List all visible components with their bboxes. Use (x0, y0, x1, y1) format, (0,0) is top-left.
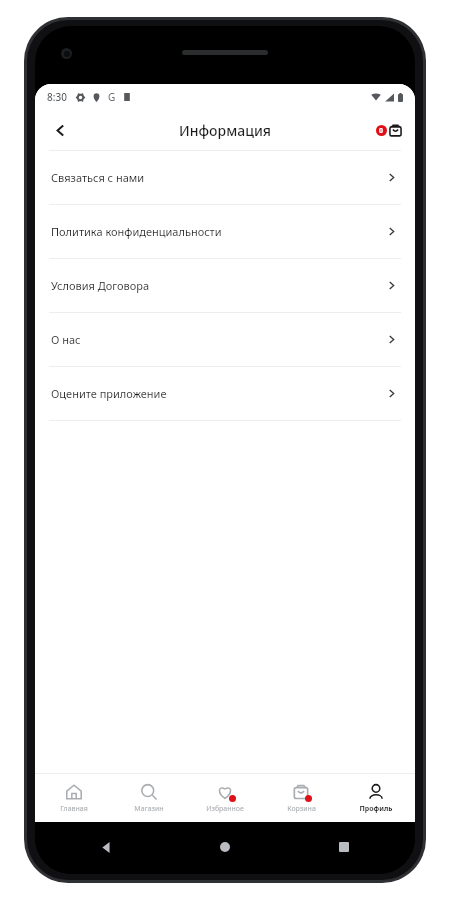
staticText: Корзина (287, 804, 316, 814)
button[interactable]: Условия Договора (35, 259, 415, 312)
button[interactable]: О нас (35, 313, 415, 366)
staticText: Избранное (206, 804, 244, 814)
button[interactable]: Cart (371, 112, 407, 148)
staticText: Условия Договора (51, 278, 386, 293)
button[interactable]: Оцените приложение (35, 367, 415, 420)
staticText: 0 (379, 126, 384, 136)
button[interactable]: Back (43, 113, 77, 147)
staticText: Политика конфиденциальности (51, 224, 386, 239)
staticText: 8:30 (47, 90, 67, 104)
button[interactable]: Home (212, 834, 238, 860)
button[interactable]: Избранное (188, 783, 262, 814)
button[interactable]: Recent apps (331, 834, 357, 860)
button[interactable]: Магазин (112, 783, 186, 814)
staticText: Информация (179, 121, 271, 140)
button[interactable]: Связаться с нами (35, 151, 415, 204)
button[interactable]: Политика конфиденциальности (35, 205, 415, 258)
button[interactable]: Корзина (264, 783, 338, 814)
staticText: О нас (51, 332, 386, 347)
staticText: G (108, 90, 116, 104)
staticText: Главная (60, 804, 88, 814)
button[interactable]: Профиль (339, 783, 413, 814)
button[interactable]: Back (93, 834, 119, 860)
staticText: Магазин (134, 804, 164, 814)
button[interactable]: Главная (37, 783, 111, 814)
staticText: Связаться с нами (51, 170, 386, 185)
staticText: Оцените приложение (51, 386, 386, 401)
staticText: Профиль (359, 804, 393, 814)
